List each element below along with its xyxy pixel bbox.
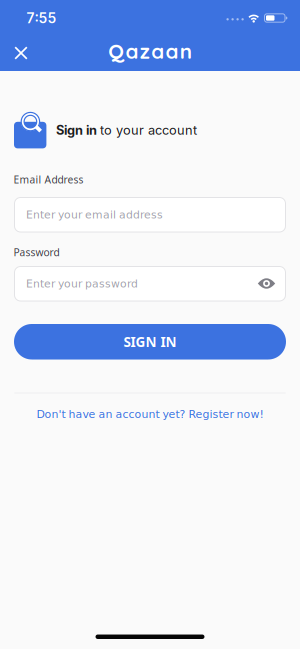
staticText: a xyxy=(125,38,138,64)
staticText: a xyxy=(165,38,178,64)
staticText: 7:55 xyxy=(26,10,56,27)
staticText: Enter your password xyxy=(26,277,138,290)
staticText: Email Address xyxy=(14,172,84,186)
button[interactable] xyxy=(252,269,280,297)
staticText: z xyxy=(140,38,150,64)
button[interactable]: SIGN IN xyxy=(14,324,286,359)
staticText: a xyxy=(151,38,164,64)
staticText: Don't have an account yet? Register now! xyxy=(36,408,263,420)
button[interactable]: Don't have an account yet? Register now! xyxy=(0,407,300,421)
staticText: SIGN IN xyxy=(123,332,176,351)
staticText: Password xyxy=(14,245,60,259)
staticText: Q xyxy=(108,38,124,64)
staticText: Sign in to your account xyxy=(56,122,197,137)
staticText: n xyxy=(180,38,192,64)
button[interactable] xyxy=(10,42,31,63)
staticText: Enter your email address xyxy=(26,208,163,221)
